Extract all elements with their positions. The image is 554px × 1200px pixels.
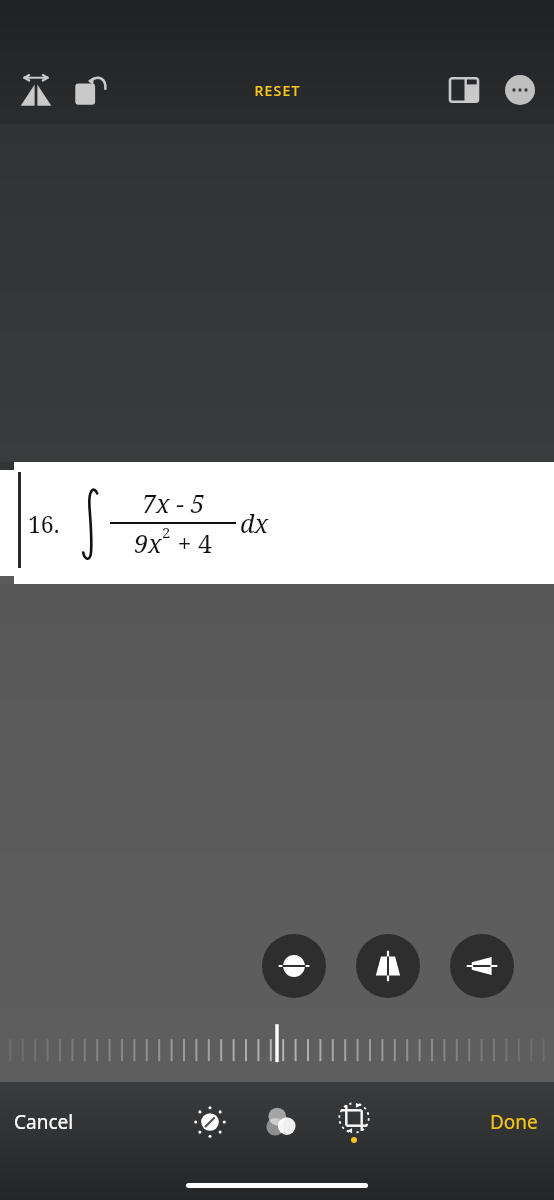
staticText: Done bbox=[490, 1109, 538, 1135]
button[interactable]: Rotate bbox=[62, 62, 118, 118]
button[interactable]: Filters bbox=[253, 1093, 311, 1151]
button[interactable]: Skew perspective bbox=[450, 934, 514, 998]
button[interactable]: Aspect ratio bbox=[436, 62, 492, 118]
button[interactable]: Flip horizontal bbox=[8, 62, 64, 118]
button[interactable]: Horizontal perspective bbox=[262, 934, 326, 998]
button[interactable]: Adjust bbox=[181, 1093, 239, 1151]
button[interactable]: Rotation slider bbox=[0, 1030, 554, 1078]
staticText: 9x bbox=[134, 526, 162, 560]
staticText: RESET bbox=[254, 81, 301, 100]
button[interactable]: More options bbox=[492, 62, 548, 118]
button[interactable]: Done bbox=[476, 1101, 554, 1143]
staticText: dx bbox=[240, 506, 269, 540]
button[interactable]: Cancel bbox=[0, 1101, 88, 1143]
staticText: 7x − 5 bbox=[142, 486, 205, 520]
button[interactable]: RESET bbox=[240, 75, 315, 106]
button[interactable]: Crop and rotate bbox=[325, 1093, 383, 1151]
staticText: 2 bbox=[162, 522, 171, 542]
staticText: 16. bbox=[28, 508, 60, 539]
staticText: Cancel bbox=[14, 1109, 74, 1135]
staticText: + 4 bbox=[171, 526, 212, 560]
button[interactable]: Vertical perspective bbox=[356, 934, 420, 998]
